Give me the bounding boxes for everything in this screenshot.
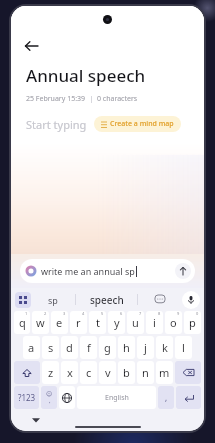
staticText: x [67,365,73,380]
staticText: Start typing [26,117,87,132]
button[interactable]: u [127,311,144,334]
button[interactable]: Back [17,32,45,60]
button[interactable]: sp [31,288,75,311]
button[interactable]: b [118,361,135,384]
staticText: t [96,315,100,330]
staticText: g [104,340,111,355]
staticText: z [48,365,54,380]
staticText: English [105,393,129,403]
button[interactable]: s [42,336,59,359]
staticText: 0 characters [97,94,138,104]
button[interactable]: Enter [176,386,201,409]
button[interactable]: l [175,336,192,359]
button[interactable]: Voice input [182,291,200,309]
staticText: Annual speech [26,64,146,87]
button[interactable]: y [108,311,125,334]
staticText: 25 February 15:39 [26,94,86,104]
button[interactable]: Shift [14,361,40,384]
staticText: q [19,315,26,330]
button[interactable]: Emoji [138,288,182,311]
button[interactable]: o [165,311,182,334]
staticText: ?123 [18,392,36,403]
button[interactable]: r [70,311,87,334]
button[interactable]: p [184,311,201,334]
staticText: d [66,340,73,355]
staticText: b [123,365,130,380]
button[interactable]: Backspace [175,361,201,384]
staticText: 5 [101,311,104,316]
staticText: n [142,365,149,380]
staticText: write me an annual sp [41,265,135,277]
button[interactable]: a [23,336,40,359]
staticText: 1 [25,311,28,316]
staticText: 7 [139,311,142,316]
staticText: u [132,315,139,330]
staticText: speech [90,293,124,307]
staticText: r [76,315,81,330]
staticText: c [86,365,92,380]
button[interactable]: , [158,386,174,409]
staticText: 4 [82,311,85,316]
button[interactable]: speech [76,288,137,311]
button[interactable]: g [99,336,116,359]
button[interactable]: i [146,311,163,334]
staticText: ☺ [46,390,53,397]
staticText: , [165,392,168,403]
staticText: v [105,365,111,380]
button[interactable]: Send [175,263,191,279]
staticText: 2 [44,311,47,316]
button[interactable]: m [156,361,173,384]
staticText: e [56,315,63,330]
staticText: i [153,315,156,330]
button[interactable]: j [137,336,154,359]
button[interactable]: e [51,311,68,334]
button[interactable]: Change language [59,386,75,409]
button[interactable]: w [32,311,49,334]
staticText: h [123,340,130,355]
staticText: 6 [120,311,123,316]
button[interactable]: k [156,336,173,359]
button[interactable]: Create a mind map [94,116,181,132]
button[interactable]: English [77,386,156,409]
button[interactable]: z [42,361,59,384]
staticText: , [49,397,51,405]
staticText: s [48,340,54,355]
button[interactable]: q [14,311,30,334]
staticText: 3 [63,311,66,316]
staticText: a [28,340,35,355]
staticText: o [170,315,177,330]
button[interactable]: c [80,361,97,384]
staticText: p [189,315,196,330]
button[interactable]: f [80,336,97,359]
staticText: m [159,365,170,380]
button[interactable]: Hide keyboard [28,412,44,428]
button[interactable]: x [61,361,78,384]
staticText: f [87,340,91,355]
staticText: 9 [177,311,180,316]
staticText: y [114,315,120,330]
staticText: 8 [158,311,161,316]
button[interactable]: ?123 [14,386,39,409]
button[interactable]: v [99,361,116,384]
button[interactable]: Clipboard [15,292,31,308]
button[interactable]: h [118,336,135,359]
staticText: Create a mind map [110,119,174,129]
button[interactable]: Symbols [41,386,57,409]
staticText: sp [48,294,58,306]
button[interactable]: n [137,361,154,384]
staticText: j [144,340,147,355]
staticText: 0 [196,311,199,316]
staticText: l [182,340,185,355]
button[interactable]: t [89,311,106,334]
button[interactable]: d [61,336,78,359]
staticText: k [162,340,168,355]
staticText: w [36,315,45,330]
button[interactable]: write me an annual sp [20,259,195,283]
